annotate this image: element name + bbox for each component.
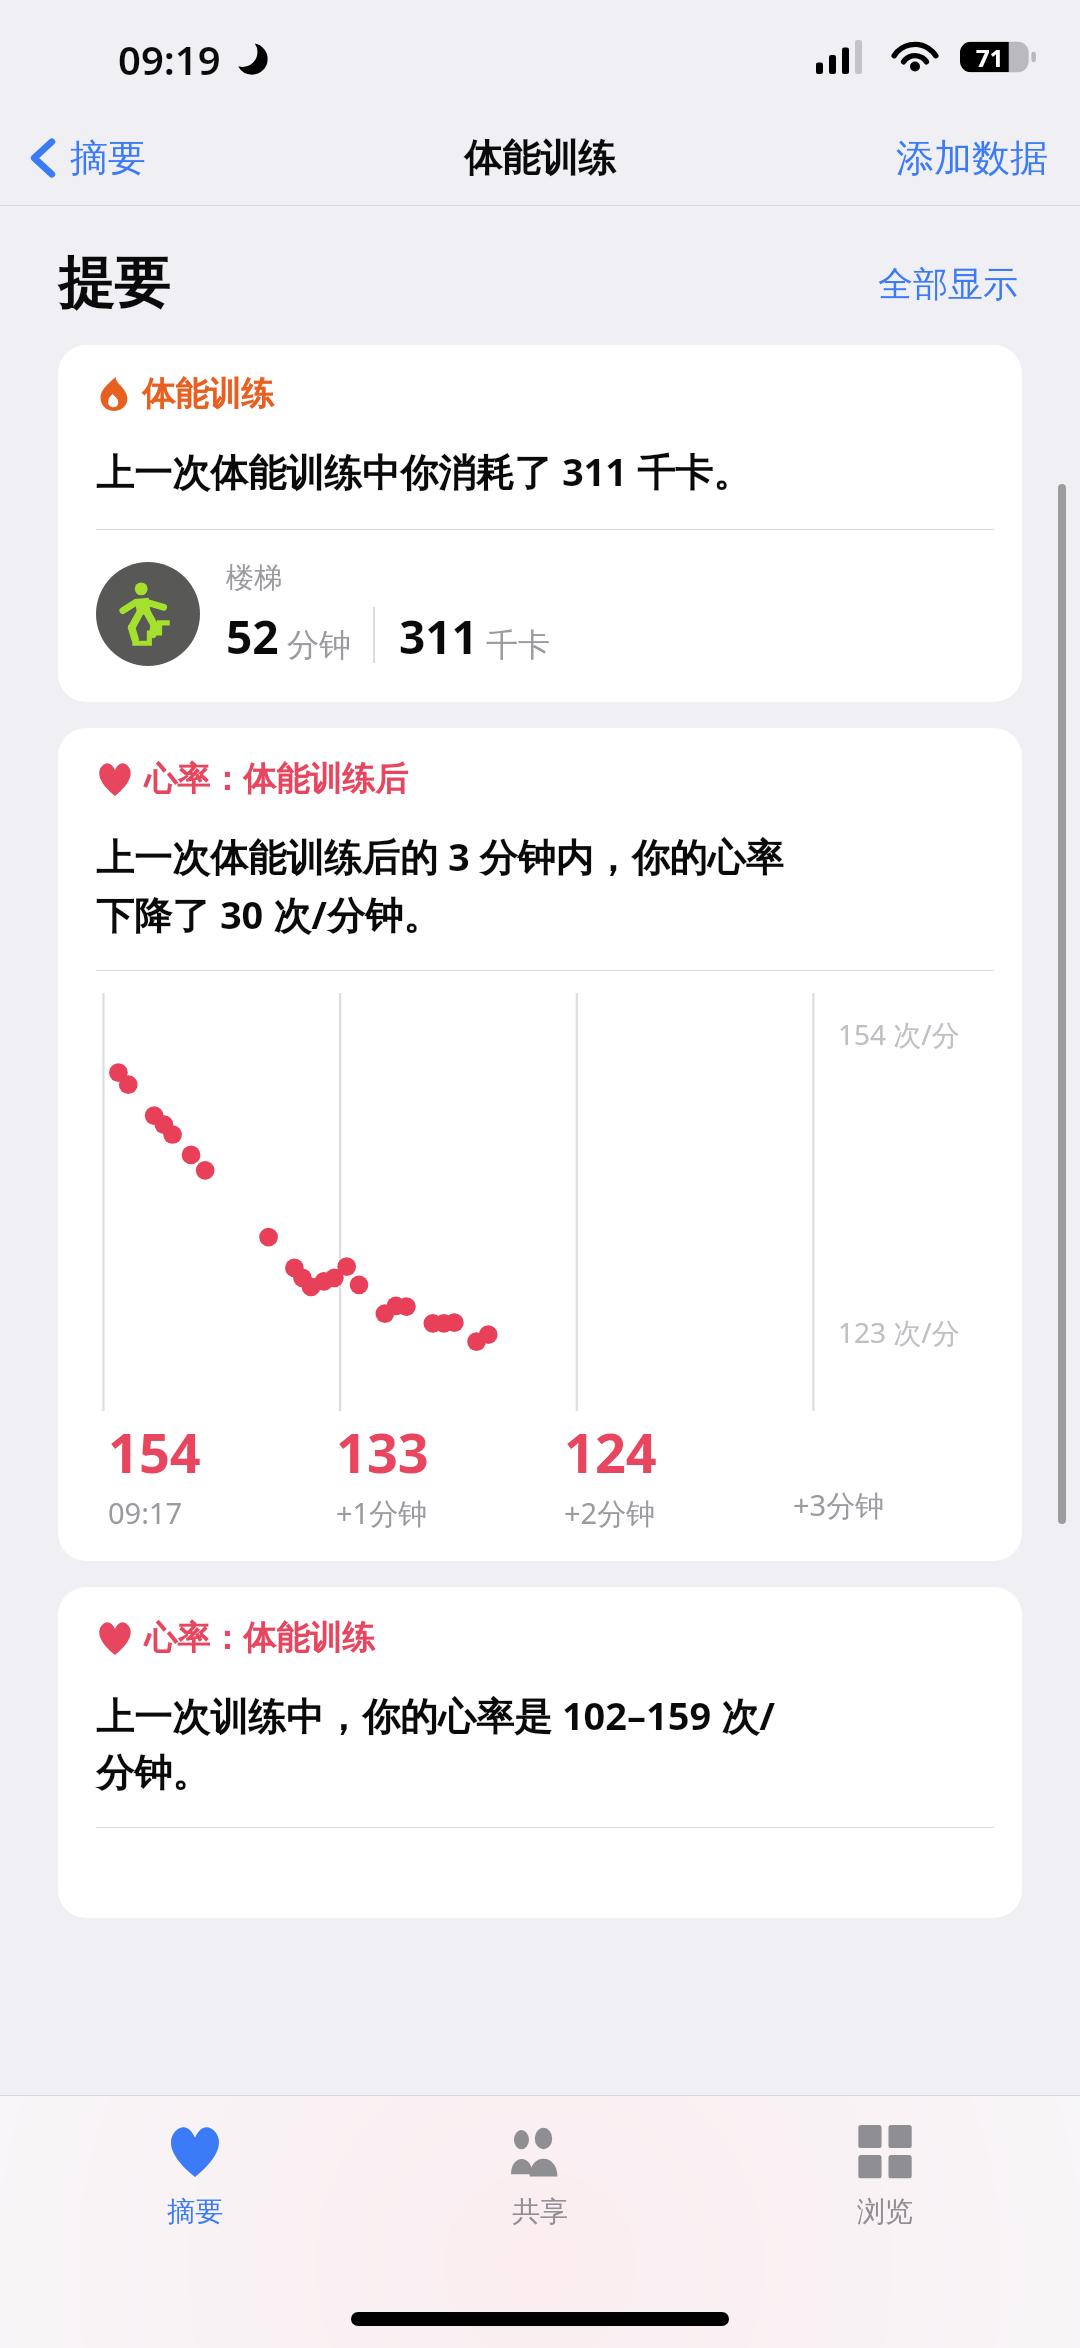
staticText: 上一次训练中，你的心率是 102–159 次/ 分钟。 [96, 1689, 775, 1797]
button[interactable]: 添加数据 [890, 126, 1054, 190]
other: 摘要 [166, 2122, 224, 2180]
button[interactable]: 浏览 [735, 2096, 1035, 2229]
button[interactable]: 心率：体能训练 [58, 1587, 1022, 1918]
button[interactable]: 共享 [390, 2096, 690, 2229]
staticText: +1分钟 [336, 1493, 428, 1533]
staticText: 154 [108, 1415, 201, 1489]
staticText: 分钟 [287, 625, 351, 665]
other: 浏览 [856, 2122, 914, 2180]
staticText: 体能训练 [142, 373, 274, 415]
staticText: 123 次/分 [838, 1313, 960, 1351]
staticText: 千卡 [486, 625, 550, 665]
staticText: 52 [226, 605, 279, 668]
staticText: 摘要 [167, 2194, 223, 2229]
button[interactable]: 全部显示 [874, 256, 1022, 312]
staticText: 心率：体能训练 [144, 1617, 375, 1659]
staticText: 154 次/分 [838, 1015, 960, 1053]
staticText: 09:17 [108, 1493, 183, 1532]
staticText: 体能训练 [464, 134, 616, 182]
staticText: 133 [336, 1415, 429, 1489]
staticText: 心率：体能训练后 [144, 758, 408, 800]
staticText: 摘要 [70, 134, 146, 182]
staticText: 上一次体能训练中你消耗了 311 千卡。 [96, 445, 751, 497]
button[interactable]: 摘要 [24, 126, 152, 190]
staticText: 楼梯 [226, 560, 282, 595]
other: 共享 [511, 2122, 569, 2180]
staticText: 全部显示 [878, 262, 1018, 306]
staticText: 添加数据 [896, 134, 1048, 182]
staticText: 提要 [58, 248, 170, 319]
button[interactable]: 摘要 [45, 2096, 345, 2229]
staticText: +3分钟 [793, 1485, 885, 1525]
staticText: 311 [399, 605, 478, 668]
staticText: 124 [564, 1415, 657, 1489]
staticText: 71 [976, 41, 1004, 74]
button[interactable]: 心率：体能训练后 [58, 728, 1022, 1561]
staticText: 09:19 [118, 32, 221, 86]
staticText: +2分钟 [564, 1493, 656, 1533]
staticText: 浏览 [857, 2194, 913, 2229]
staticText: 共享 [512, 2194, 568, 2229]
staticText: 上一次体能训练后的 3 分钟内，你的心率 下降了 30 次/分钟。 [96, 830, 784, 940]
button[interactable]: 体能训练 [58, 345, 1022, 702]
